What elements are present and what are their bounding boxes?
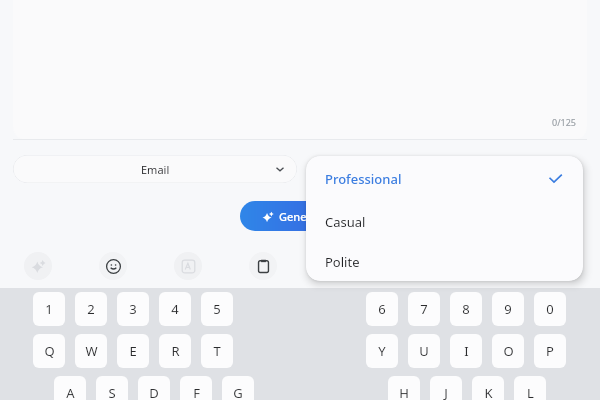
button[interactable]: A [54,376,86,400]
staticText: L [527,384,534,400]
staticText: 8 [462,300,470,318]
staticText: Polite [325,253,360,271]
button[interactable]: Translate [174,252,202,280]
staticText: Casual [325,213,366,231]
staticText: 7 [420,300,428,318]
staticText: F [193,384,200,400]
staticText: P [546,342,554,360]
button[interactable]: T [201,334,233,368]
staticText: 9 [504,300,512,318]
button[interactable]: F [180,376,212,400]
staticText: 3 [129,300,137,318]
staticText: Generate [279,209,328,224]
staticText: Y [378,342,386,360]
button[interactable]: 4 [159,292,191,326]
staticText: R [171,342,180,360]
staticText: 0/125 [552,116,576,128]
button[interactable]: H [388,376,420,400]
button[interactable]: Professional [306,156,583,201]
button[interactable]: P [534,334,566,368]
button[interactable]: J [430,376,462,400]
staticText: Email [141,162,170,177]
button[interactable]: K [472,376,504,400]
button[interactable]: Clipboard [249,252,277,280]
button[interactable]: D [138,376,170,400]
button[interactable]: Email [13,155,297,183]
staticText: T [213,342,221,360]
button[interactable]: 8 [450,292,482,326]
button[interactable]: O [492,334,524,368]
button[interactable]: 1 [33,292,65,326]
button[interactable]: Generate [240,201,360,231]
button[interactable]: 3 [117,292,149,326]
staticText: E [129,342,137,360]
button[interactable]: 5 [201,292,233,326]
staticText: A [66,384,75,400]
button[interactable]: L [514,376,546,400]
button[interactable]: Y [366,334,398,368]
staticText: 4 [171,300,179,318]
staticText: 6 [378,300,386,318]
staticText: 0 [546,300,554,318]
button[interactable]: S [96,376,128,400]
button[interactable]: E [117,334,149,368]
staticText: 2 [87,300,95,318]
staticText: J [444,384,448,400]
button[interactable]: U [408,334,440,368]
staticText: G [233,384,243,400]
staticText: Professional [325,170,402,188]
staticText: D [149,384,159,400]
button[interactable]: 0 [534,292,566,326]
button[interactable]: 9 [492,292,524,326]
button[interactable]: Polite [306,242,583,281]
button[interactable]: Q [33,334,65,368]
staticText: S [108,384,116,400]
staticText: Q [44,342,55,360]
button[interactable]: AI assist [24,252,52,280]
staticText: O [503,342,514,360]
button[interactable]: 2 [75,292,107,326]
button[interactable]: G [222,376,254,400]
staticText: 5 [213,300,221,318]
staticText: H [399,384,409,400]
staticText: I [464,342,469,360]
staticText: 1 [45,300,53,318]
staticText: K [484,384,493,400]
button[interactable]: W [75,334,107,368]
staticText: W [85,342,98,360]
button[interactable]: Emoji [99,252,127,280]
button[interactable]: 7 [408,292,440,326]
button[interactable]: Casual [306,201,583,242]
staticText: U [419,342,429,360]
button[interactable]: 6 [366,292,398,326]
button[interactable]: I [450,334,482,368]
button[interactable]: R [159,334,191,368]
